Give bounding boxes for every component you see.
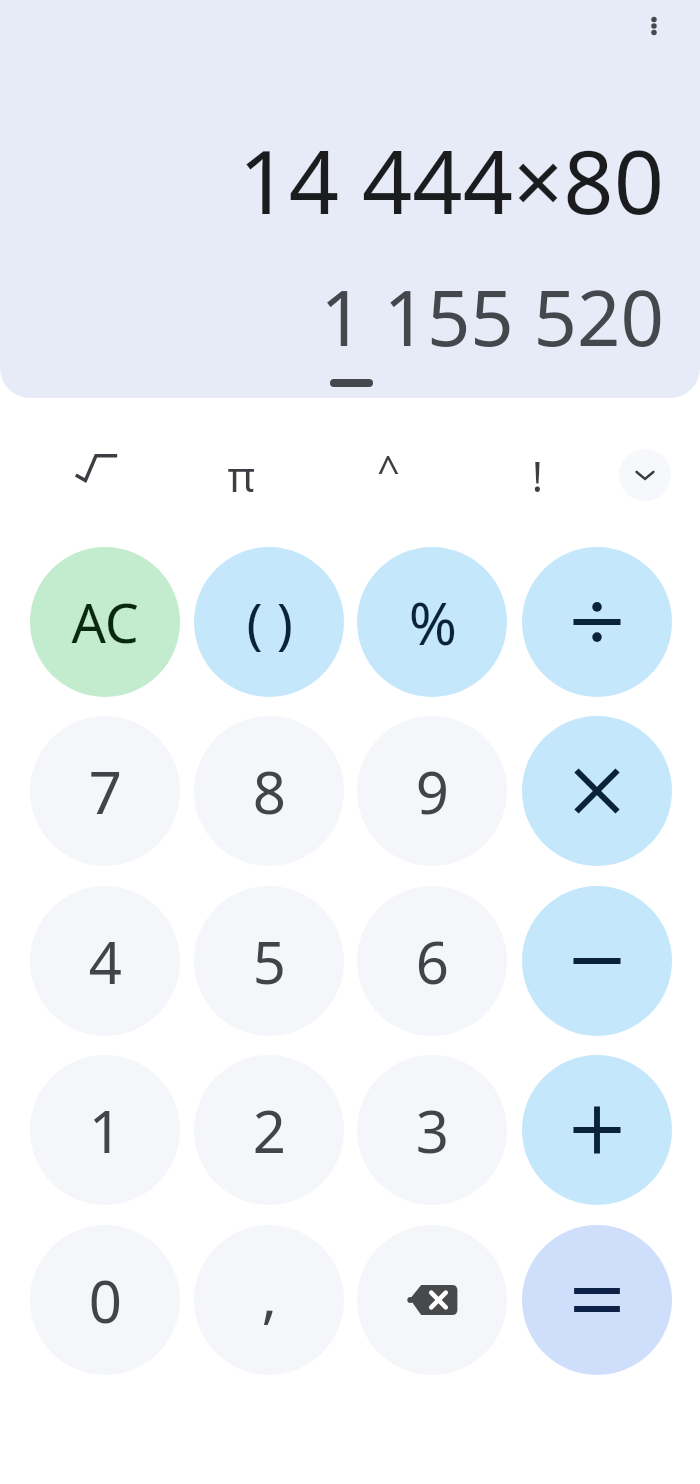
button[interactable]: AC xyxy=(30,547,180,697)
button[interactable]: More options xyxy=(622,0,686,58)
button[interactable]: 8 xyxy=(194,716,344,866)
button[interactable]: ( ) xyxy=(194,547,344,697)
button[interactable]: , xyxy=(194,1225,344,1375)
button[interactable]: 5 xyxy=(194,886,344,1036)
staticText: ( ) xyxy=(246,585,293,659)
staticText: 5 xyxy=(252,922,286,1001)
button[interactable]: Minus xyxy=(522,886,672,1036)
staticText: 1 155 520 xyxy=(320,265,664,369)
staticText: , xyxy=(261,1255,277,1334)
button[interactable]: Square root xyxy=(56,435,136,515)
button[interactable]: Expand xyxy=(612,442,678,508)
button[interactable]: ! xyxy=(497,435,577,515)
button[interactable]: % xyxy=(357,547,507,697)
staticText: ! xyxy=(531,447,543,504)
staticText: 8 xyxy=(252,752,286,831)
staticText: 1 xyxy=(88,1091,122,1170)
button[interactable]: 6 xyxy=(357,886,507,1036)
staticText: % xyxy=(408,583,457,662)
button[interactable]: 2 xyxy=(194,1055,344,1205)
staticText: AC xyxy=(71,585,139,659)
button[interactable]: 3 xyxy=(357,1055,507,1205)
button[interactable]: Plus xyxy=(522,1055,672,1205)
button[interactable]: ^ xyxy=(348,435,428,515)
staticText: 4 xyxy=(88,922,122,1001)
button[interactable]: 0 xyxy=(30,1225,180,1375)
staticText: 0 xyxy=(88,1261,122,1340)
staticText: 7 xyxy=(88,752,122,831)
button[interactable]: π xyxy=(201,435,281,515)
button[interactable]: Backspace xyxy=(357,1225,507,1375)
staticText: ^ xyxy=(377,442,400,496)
button[interactable]: 9 xyxy=(357,716,507,866)
staticText: 6 xyxy=(415,922,449,1001)
staticText: π xyxy=(227,447,255,504)
button[interactable]: 1 xyxy=(30,1055,180,1205)
button[interactable]: 7 xyxy=(30,716,180,866)
button[interactable]: Multiply xyxy=(522,716,672,866)
staticText: 2 xyxy=(252,1091,286,1170)
staticText: 9 xyxy=(415,752,449,831)
staticText: 3 xyxy=(415,1091,449,1170)
button[interactable]: 4 xyxy=(30,886,180,1036)
button[interactable]: Equals xyxy=(522,1225,672,1375)
staticText: 14 444×80 xyxy=(238,120,664,240)
button[interactable]: Divide xyxy=(522,547,672,697)
